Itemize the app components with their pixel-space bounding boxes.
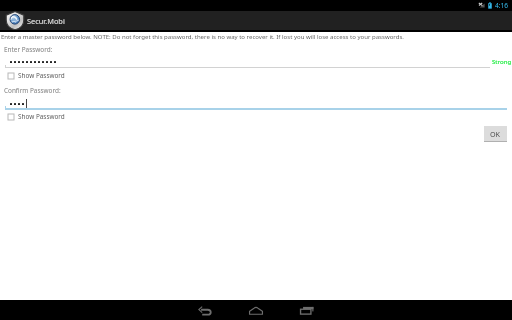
- button[interactable]: Show Password: [8, 71, 65, 80]
- staticText: Enter Password:: [4, 45, 53, 54]
- staticText: Show Password: [18, 71, 65, 80]
- button[interactable]: Secur.Mobi: [0, 11, 512, 30]
- button[interactable]: Enter Password field: [4, 54, 490, 68]
- staticText: Strong: [492, 57, 512, 65]
- staticText: Confirm Password:: [4, 86, 61, 95]
- staticText: 4:16: [495, 1, 509, 10]
- button[interactable]: Recent apps: [287, 300, 327, 320]
- staticText: Show Password: [18, 112, 65, 121]
- staticText: Secur.Mobi: [27, 16, 65, 26]
- button[interactable]: Home: [236, 300, 276, 320]
- button[interactable]: Back: [185, 300, 225, 320]
- button[interactable]: OK: [484, 126, 507, 141]
- staticText: Enter a master password below. NOTE: Do …: [1, 33, 404, 41]
- button[interactable]: Confirm Password field: [4, 95, 507, 109]
- button[interactable]: Show Password: [8, 112, 65, 121]
- staticText: OK: [490, 129, 501, 139]
